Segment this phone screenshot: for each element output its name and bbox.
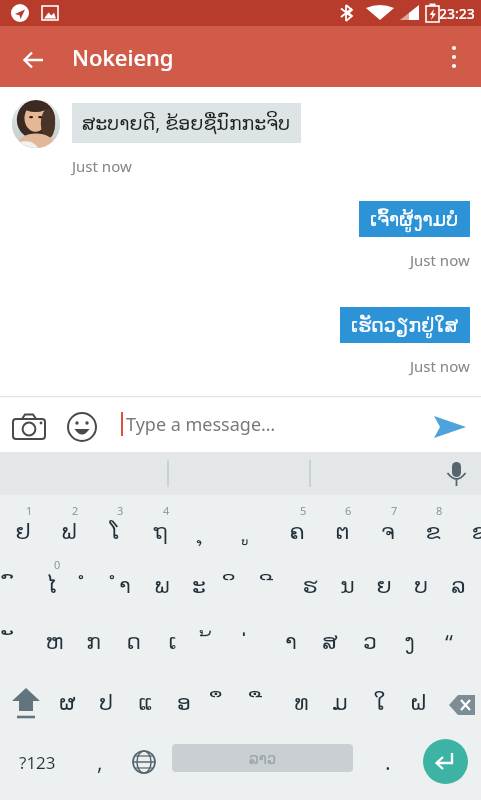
staticText: ມ: [332, 690, 348, 716]
button[interactable]: ຖ: [142, 510, 178, 554]
staticText: ເຮັດວຽກຢູ່ໃສ: [351, 314, 459, 336]
staticText: ເຈົ້າຜູ້ງາມບໍ: [370, 208, 459, 230]
button[interactable]: ລ: [440, 564, 476, 608]
button[interactable]: ຸ: [187, 510, 223, 554]
button[interactable]: ສະບາຍດີ, ຂ້ອຍຊື່ນົກກະຈິບ: [72, 103, 301, 143]
staticText: ຝ: [410, 690, 427, 716]
button[interactable]: ຈ: [370, 510, 406, 554]
button[interactable]: ປ: [88, 681, 124, 725]
staticText: 23:23: [439, 4, 475, 23]
button[interactable]: Enter: [423, 739, 468, 784]
button[interactable]: ສ: [312, 620, 348, 664]
staticText: ຟ: [61, 519, 77, 545]
button[interactable]: Camera: [8, 406, 50, 448]
button[interactable]: ຳ: [107, 564, 143, 608]
staticText: ສ: [322, 629, 338, 655]
staticText: ບ: [414, 573, 428, 599]
button[interactable]: ົ: [0, 564, 32, 608]
staticText: ຫ: [45, 629, 64, 655]
button[interactable]: ຜ: [49, 681, 85, 725]
button[interactable]: ໍ: [70, 564, 106, 608]
button[interactable]: ື: [244, 681, 280, 725]
button[interactable]: ເ: [154, 620, 190, 664]
staticText: 0: [54, 557, 61, 572]
staticText: 5: [300, 503, 307, 518]
staticText: 7: [391, 503, 398, 518]
staticText: ວ: [363, 629, 377, 655]
button[interactable]: ໂ: [96, 510, 132, 554]
button[interactable]: ຫ: [36, 620, 72, 664]
staticText: ຮ: [302, 573, 318, 599]
button[interactable]: More options: [435, 38, 473, 76]
button[interactable]: Nokeieng: [72, 42, 174, 72]
staticText: ຜ: [59, 690, 76, 716]
button[interactable]: Shift: [6, 684, 46, 724]
button[interactable]: ຝ: [400, 681, 436, 725]
button[interactable]: ຟ: [51, 510, 87, 554]
staticText: 4: [163, 503, 170, 518]
button[interactable]: .: [366, 740, 410, 784]
button[interactable]: Back: [12, 38, 56, 82]
button[interactable]: ູ: [233, 510, 269, 554]
staticText: ລາວ: [249, 750, 277, 767]
button[interactable]: ຄ: [279, 510, 315, 554]
staticText: ຂ: [425, 519, 441, 545]
staticText: ປ: [99, 690, 113, 716]
button[interactable]: Space: [172, 744, 353, 772]
button[interactable]: ຊ: [461, 510, 481, 554]
button[interactable]: Send: [429, 406, 471, 448]
button[interactable]: ນ: [329, 564, 365, 608]
staticText: ດ: [126, 629, 141, 655]
button[interactable]: ກ: [75, 620, 111, 664]
button[interactable]: ັ: [0, 620, 32, 664]
staticText: 8: [436, 503, 443, 518]
button[interactable]: າ: [273, 620, 309, 664]
staticText: “: [445, 627, 453, 657]
button[interactable]: Contact photo: [12, 100, 60, 148]
staticText: 3: [117, 503, 124, 518]
staticText: ນ: [340, 573, 355, 599]
button[interactable]: ໄ: [33, 564, 69, 608]
button[interactable]: ະ: [181, 564, 217, 608]
button[interactable]: ?123: [6, 740, 68, 784]
button[interactable]: ມ: [322, 681, 358, 725]
button[interactable]: ້: [194, 620, 230, 664]
button[interactable]: ພ: [144, 564, 180, 608]
button[interactable]: Type a message…: [126, 412, 276, 437]
staticText: ຖ: [153, 519, 168, 545]
staticText: ໃ: [373, 690, 386, 716]
button[interactable]: “: [431, 620, 467, 664]
button[interactable]: ອ: [166, 681, 202, 725]
button[interactable]: ຮ: [292, 564, 328, 608]
button[interactable]: Emoji: [61, 406, 103, 448]
staticText: ຕ: [335, 519, 350, 545]
button[interactable]: Backspace: [438, 685, 478, 725]
button[interactable]: ດ: [115, 620, 151, 664]
button[interactable]: ທ: [283, 681, 319, 725]
button[interactable]: ແ: [127, 681, 163, 725]
button[interactable]: ຢ: [5, 510, 41, 554]
button[interactable]: ເຈົ້າຜູ້ງາມບໍ: [359, 201, 470, 237]
button[interactable]: Change language: [122, 740, 166, 784]
staticText: ຢ: [15, 519, 31, 545]
button[interactable]: Voice input: [439, 457, 473, 491]
button[interactable]: ຍ: [366, 564, 402, 608]
staticText: ອ: [177, 690, 191, 716]
button[interactable]: ບ: [403, 564, 439, 608]
staticText: າ: [285, 629, 297, 655]
button[interactable]: ຂ: [415, 510, 451, 554]
button[interactable]: ີ: [255, 564, 291, 608]
button[interactable]: ງ: [391, 620, 427, 664]
staticText: ລ: [451, 573, 466, 599]
button[interactable]: ຶ: [205, 681, 241, 725]
button[interactable]: ່: [233, 620, 269, 664]
staticText: ໄ: [46, 573, 57, 599]
button[interactable]: ເຮັດວຽກຢູ່ໃສ: [340, 307, 470, 343]
button[interactable]: ຕ: [324, 510, 360, 554]
button[interactable]: ິ: [218, 564, 254, 608]
button[interactable]: ,: [78, 740, 122, 784]
staticText: ,: [97, 748, 103, 777]
staticText: ຄ: [289, 519, 305, 545]
button[interactable]: ໃ: [361, 681, 397, 725]
button[interactable]: ວ: [352, 620, 388, 664]
